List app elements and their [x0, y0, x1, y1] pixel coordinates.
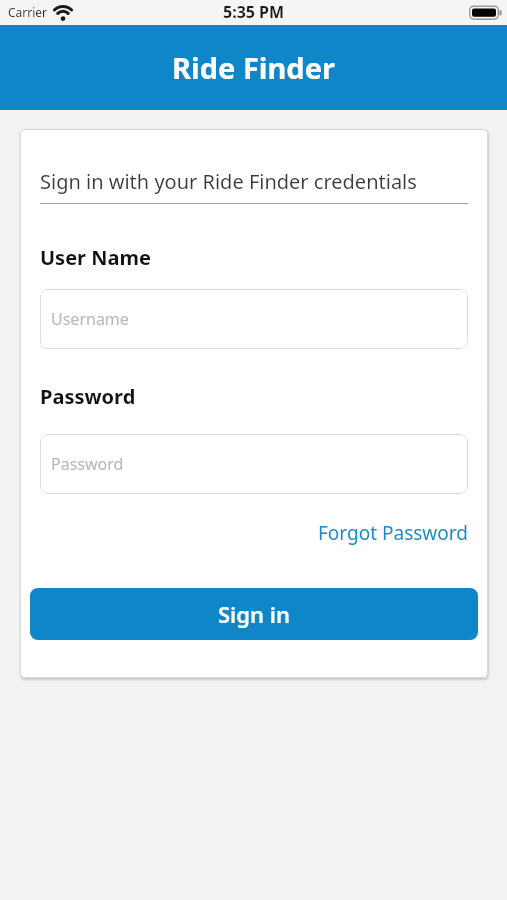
staticText: Sign in with your Ride Finder credential…: [40, 168, 417, 195]
staticText: User Name: [40, 244, 151, 271]
button[interactable]: Password: [40, 434, 468, 494]
staticText: Password: [51, 453, 124, 475]
button[interactable]: Forgot Password: [318, 520, 468, 546]
staticText: Carrier: [8, 4, 48, 20]
staticText: Ride Finder: [172, 48, 335, 87]
staticText: 5:35 PM: [223, 1, 285, 23]
staticText: Password: [40, 383, 136, 410]
staticText: Sign in: [218, 599, 291, 629]
button[interactable]: Sign in: [30, 588, 478, 640]
button[interactable]: Username: [40, 289, 468, 349]
staticText: Username: [51, 308, 129, 330]
